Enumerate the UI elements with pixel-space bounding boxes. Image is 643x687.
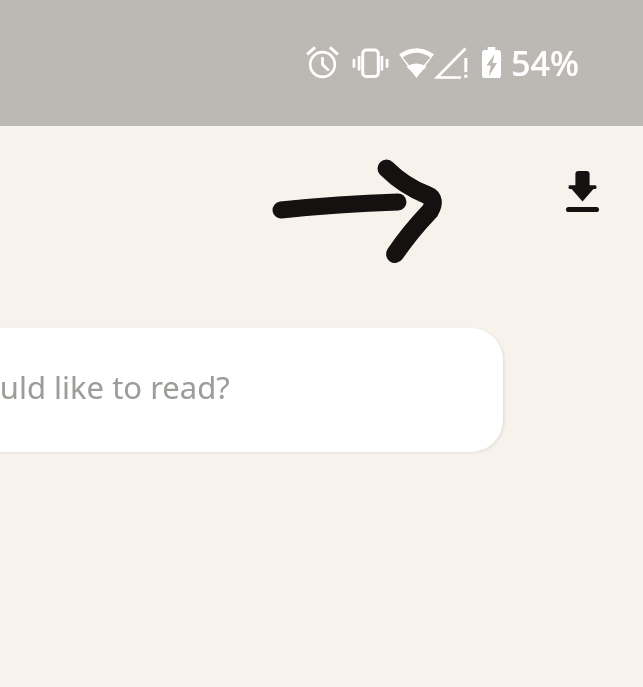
button[interactable]: Download	[548, 157, 616, 225]
staticText: 54%	[511, 40, 579, 86]
button[interactable]: What would like to read?	[0, 328, 503, 452]
staticText: What would like to read?	[0, 366, 230, 408]
